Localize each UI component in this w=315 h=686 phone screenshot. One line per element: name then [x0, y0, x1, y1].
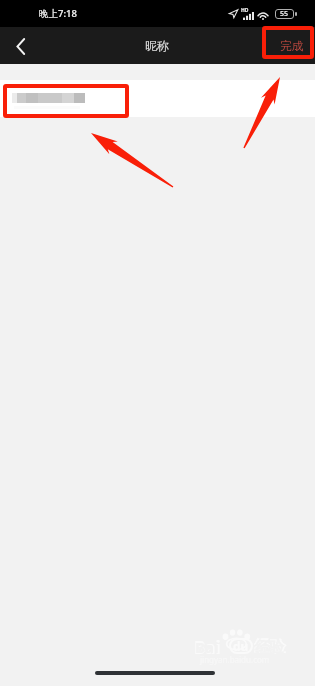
staticText: 完成: [280, 39, 303, 53]
button[interactable]: 完成: [280, 39, 303, 53]
staticText: 晚上7:18: [39, 7, 77, 20]
staticText: du: [233, 638, 249, 654]
button[interactable]: Back: [6, 31, 36, 61]
staticText: 55: [280, 9, 289, 19]
button[interactable]: [0, 80, 315, 117]
staticText: 昵称: [145, 38, 169, 53]
staticText: HD: [241, 7, 249, 14]
